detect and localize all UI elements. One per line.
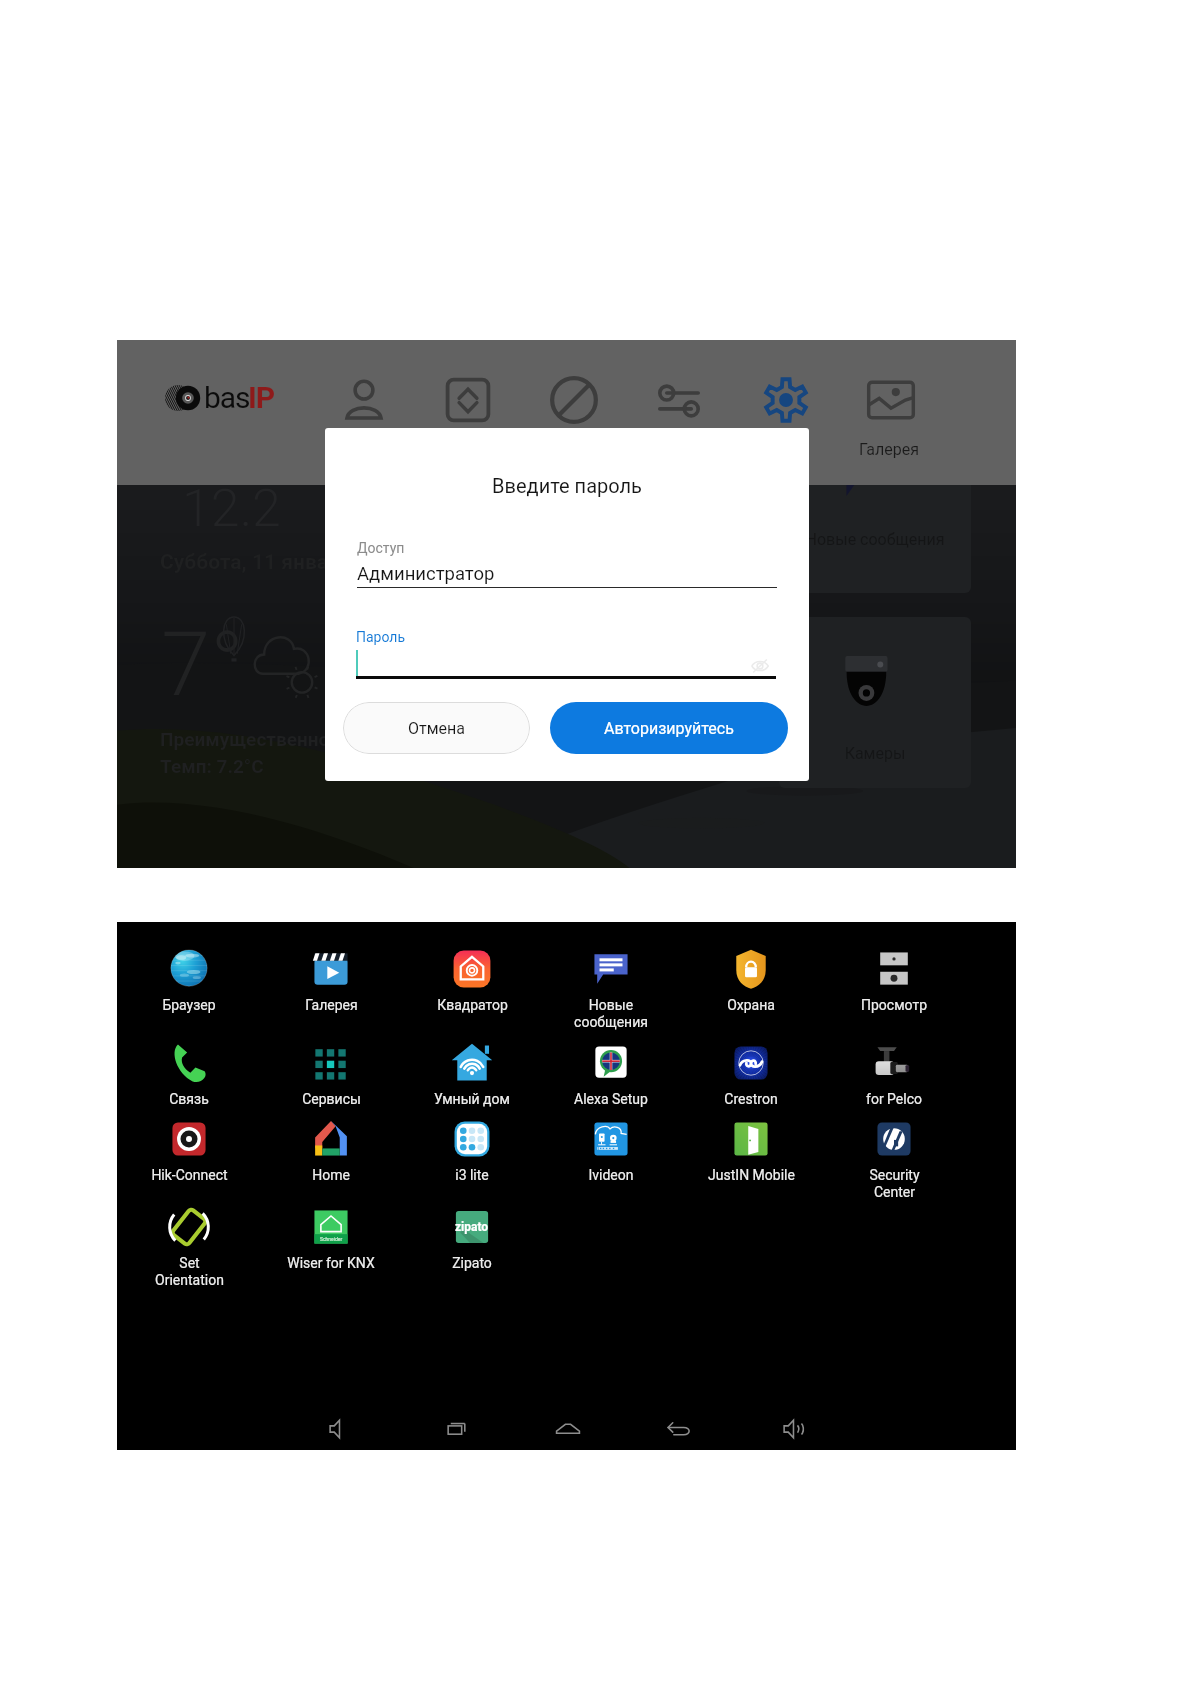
- staticText: Администратор: [357, 563, 495, 585]
- button[interactable]: Просмотр: [826, 946, 962, 1013]
- button[interactable]: Home: [534, 1408, 602, 1450]
- staticText: Камеры: [779, 744, 971, 763]
- staticText: Умный дом: [434, 1091, 510, 1107]
- staticText: Hik-Connect: [151, 1167, 228, 1183]
- button[interactable]: Volume up: [760, 1408, 828, 1450]
- staticText: Преимущественно облачно: [160, 728, 409, 750]
- button[interactable]: Alexa Setup: [543, 1040, 679, 1107]
- staticText: i3 lite: [455, 1167, 489, 1183]
- staticText: Set Orientation: [155, 1255, 224, 1289]
- button[interactable]: Security Center: [826, 1116, 962, 1201]
- button[interactable]: Отмена: [343, 702, 530, 754]
- button[interactable]: Связь: [121, 1040, 257, 1107]
- staticText: Пароль: [356, 629, 406, 645]
- button[interactable]: Hik-Connect: [121, 1116, 257, 1183]
- staticText: zipato: [455, 1220, 489, 1234]
- staticText: 7°: [161, 612, 245, 716]
- staticText: Введите пароль: [325, 474, 809, 497]
- button[interactable]: Система: [752, 366, 820, 434]
- staticText: Alexa Setup: [574, 1091, 648, 1107]
- button[interactable]: zipato: [404, 1204, 540, 1271]
- staticText: Авторизируйтесь: [604, 719, 734, 738]
- button[interactable]: Set Orientation: [121, 1204, 257, 1289]
- staticText: Ivideon: [588, 1167, 634, 1183]
- staticText: Браузер: [162, 997, 216, 1013]
- staticText: Суббота, 11 января: [160, 550, 352, 575]
- staticText: bas: [204, 380, 250, 415]
- staticText: Zipato: [452, 1255, 492, 1271]
- button[interactable]: Сервисы: [263, 1040, 399, 1107]
- staticText: Охрана: [727, 997, 775, 1013]
- staticText: JustIN Mobile: [708, 1167, 795, 1183]
- staticText: Галерея: [829, 440, 949, 459]
- staticText: IP: [248, 380, 274, 415]
- staticText: Галерея: [305, 997, 358, 1013]
- button[interactable]: Новые сообщения: [779, 425, 971, 593]
- button[interactable]: JustIN Mobile: [683, 1116, 819, 1183]
- button[interactable]: Охрана: [683, 946, 819, 1013]
- staticText: 12.2: [182, 478, 281, 539]
- staticText: Доступ: [357, 540, 405, 556]
- staticText: for Pelco: [866, 1091, 922, 1107]
- button[interactable]: Умный дом: [404, 1040, 540, 1107]
- button[interactable]: Камеры: [779, 617, 971, 788]
- button[interactable]: Ivideon: [543, 1116, 679, 1183]
- staticText: Отмена: [408, 719, 465, 738]
- staticText: Квадратор: [437, 997, 508, 1013]
- button[interactable]: Новые сообщения: [543, 946, 679, 1031]
- button[interactable]: Профиль: [330, 366, 398, 434]
- button[interactable]: for Pelco: [826, 1040, 962, 1107]
- button[interactable]: Галерея: [263, 946, 399, 1013]
- staticText: Связь: [169, 1091, 209, 1107]
- staticText: Просмотр: [861, 997, 927, 1013]
- button[interactable]: Лифт: [434, 366, 502, 434]
- staticText: Wiser for KNX: [287, 1255, 375, 1271]
- staticText: Новые сообщения: [574, 997, 648, 1031]
- button[interactable]: Schneider: [263, 1204, 399, 1271]
- staticText: Темп: 7.2°C: [160, 755, 264, 777]
- button[interactable]: Crestron: [683, 1040, 819, 1107]
- button[interactable]: Квадратор: [404, 946, 540, 1013]
- button[interactable]: Не беспокоить: [540, 366, 608, 434]
- staticText: Сервисы: [302, 1091, 361, 1107]
- button[interactable]: Volume down: [306, 1408, 374, 1450]
- button[interactable]: i3 lite: [404, 1116, 540, 1183]
- staticText: Security Center: [869, 1167, 920, 1201]
- button[interactable]: Home: [263, 1116, 399, 1183]
- button[interactable]: Настройки: [645, 366, 713, 434]
- button[interactable]: Галерея: [857, 366, 925, 434]
- staticText: Новые сообщения: [779, 530, 971, 549]
- button[interactable]: Авторизируйтесь: [550, 702, 788, 754]
- button[interactable]: Браузер: [121, 946, 257, 1013]
- staticText: Schneider: [320, 1236, 343, 1242]
- button[interactable]: Recents: [423, 1408, 491, 1450]
- staticText: Crestron: [724, 1091, 778, 1107]
- button[interactable]: Back: [645, 1408, 713, 1450]
- staticText: Home: [312, 1167, 350, 1183]
